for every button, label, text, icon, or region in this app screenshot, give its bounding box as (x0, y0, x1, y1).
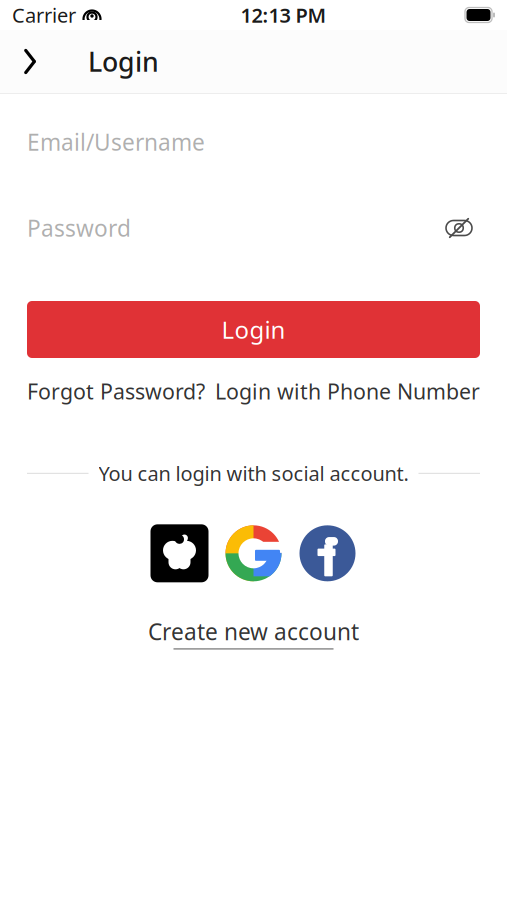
staticText: Carrier (12, 2, 76, 28)
button[interactable]: Login (27, 301, 480, 358)
button[interactable]: Sign in with Apple (150, 524, 208, 582)
staticText: Login (221, 314, 285, 345)
button[interactable]: Create new account (148, 616, 359, 649)
staticText: Email/Username (27, 127, 205, 157)
staticText: Password (27, 213, 131, 243)
staticText: Login with Phone Number (215, 377, 480, 405)
staticText: 12:13 PM (240, 2, 326, 28)
button[interactable]: Sign in with Facebook (298, 524, 356, 582)
button[interactable]: Forgot Password? (27, 371, 205, 411)
button[interactable]: Back (10, 40, 50, 82)
staticText: Forgot Password? (27, 377, 205, 405)
staticText: Login (88, 44, 159, 79)
staticText: Create new account (148, 616, 359, 646)
button[interactable]: Login with Phone Number (215, 371, 480, 411)
button[interactable]: Show password (438, 210, 480, 246)
button[interactable]: Sign in with Google (224, 524, 282, 582)
staticText: You can login with social account. (98, 460, 408, 487)
